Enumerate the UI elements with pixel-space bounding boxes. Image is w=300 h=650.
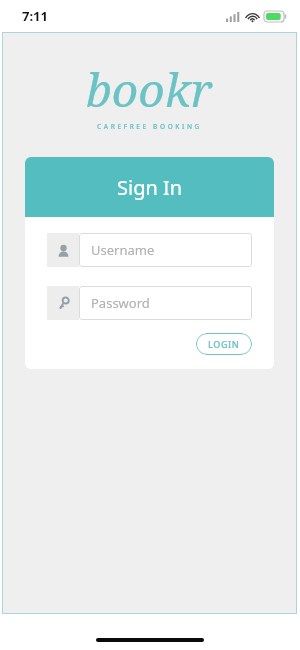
staticText: CAREFREE BOOKING (97, 122, 202, 131)
button[interactable]: Sign In (25, 157, 274, 217)
staticText: Username (91, 241, 155, 259)
staticText: Sign In (117, 174, 183, 201)
button[interactable]: LOGIN (196, 333, 252, 355)
other: Password (57, 297, 70, 310)
staticText: 7:11 (22, 7, 48, 25)
staticText: bookr (86, 58, 213, 121)
staticText: LOGIN (208, 338, 240, 350)
staticText: Password (91, 294, 150, 312)
button[interactable]: Password (79, 286, 252, 320)
other: Username (57, 244, 70, 257)
button[interactable]: Username (79, 233, 252, 267)
